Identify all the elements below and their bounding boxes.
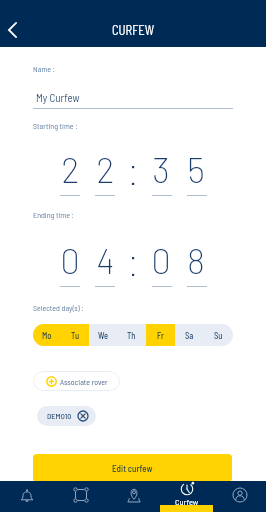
button[interactable]: 0 [150,239,172,281]
button[interactable]: 2 [94,148,116,190]
button[interactable]: We [89,324,117,346]
button[interactable]: 5 [185,148,207,190]
button[interactable]: Back [0,12,25,47]
button[interactable]: Zones [54,481,107,512]
staticText: Starting time : [33,121,78,131]
button[interactable]: DEMO10 [37,406,96,426]
button[interactable]: Fr [146,324,175,346]
staticText: 0 [151,239,171,281]
staticText: We [98,330,109,340]
staticText: 3 [152,148,170,190]
button[interactable]: Profile [213,481,266,512]
staticText: Curfew [175,496,199,506]
button[interactable]: Curfew [160,481,213,512]
staticText: CURFEW [112,22,155,37]
staticText: Selected day(s) : [33,303,84,313]
staticText: Sa [185,330,194,340]
staticText: Associate rover [60,377,108,387]
staticText: 2 [96,148,115,190]
staticText: 4 [96,239,115,281]
staticText: Ending time : [33,210,74,220]
button[interactable]: 8 [185,239,207,281]
staticText: 2 [61,148,80,190]
button[interactable]: Th [117,324,146,346]
button[interactable]: 4 [94,239,116,281]
staticText: Th [127,330,136,340]
button[interactable]: Su [204,324,233,346]
button[interactable]: Edit curfew [33,454,232,482]
button[interactable]: 3 [150,148,172,190]
staticText: My Curfew [36,91,80,104]
staticText: Name : [33,64,55,74]
button[interactable]: Mo [33,324,61,346]
button[interactable]: Associate rover [33,371,120,391]
staticText: Su [214,330,223,340]
button[interactable]: Map [107,481,160,512]
staticText: Tu [71,330,80,340]
staticText: 5 [187,148,205,190]
button[interactable]: Tu [61,324,89,346]
button[interactable]: Alerts [0,481,54,512]
staticText: 8 [187,239,205,281]
button[interactable]: 2 [59,148,81,190]
staticText: DEMO10 [47,411,72,421]
button[interactable]: Sa [175,324,204,346]
staticText: Edit curfew [112,463,153,474]
staticText: Fr [157,330,164,340]
button[interactable]: 0 [59,239,81,281]
staticText: Mo [42,330,52,340]
staticText: 0 [60,239,80,281]
